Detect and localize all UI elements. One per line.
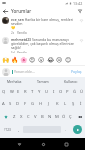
button[interactable]: Backspace <box>74 110 85 123</box>
staticText: Ü <box>80 89 84 95</box>
button[interactable]: 😮 <box>37 55 46 64</box>
button[interactable]: Back <box>1 7 9 15</box>
button[interactable]: Send <box>73 125 82 134</box>
button[interactable]: Kullanıcı <box>57 77 85 86</box>
button[interactable]: F <box>21 98 29 110</box>
button[interactable]: C <box>25 110 32 123</box>
button[interactable]: Like <box>78 17 84 23</box>
button[interactable]: D <box>14 98 21 110</box>
button[interactable]: P <box>64 86 71 98</box>
button[interactable]: ?123 <box>0 123 15 136</box>
button[interactable]: Ö <box>60 110 67 123</box>
button[interactable]: İ <box>77 98 85 110</box>
button[interactable]: U <box>43 86 50 98</box>
staticText: H <box>39 101 43 107</box>
staticText: . <box>65 127 67 133</box>
staticText: 😂 <box>47 56 55 63</box>
button[interactable]: Recents <box>61 139 71 149</box>
button[interactable]: Shift <box>0 110 11 123</box>
button[interactable]: Like <box>78 37 84 43</box>
button[interactable]: Paylaş <box>70 68 83 75</box>
button[interactable]: Q <box>0 86 8 98</box>
staticText: M <box>55 114 59 120</box>
staticText: Paylaş <box>71 69 82 74</box>
button[interactable]: R <box>22 86 29 98</box>
button[interactable]: S <box>7 98 14 110</box>
button[interactable]: I <box>50 86 57 98</box>
button[interactable]: Ü <box>78 86 85 98</box>
staticText: I <box>53 89 55 95</box>
staticText: E <box>17 89 20 95</box>
staticText: ece_sen Harika bir kare olmuş, renkleri … <box>11 17 77 30</box>
staticText: Ş <box>72 101 75 107</box>
staticText: V <box>34 114 37 120</box>
staticText: Ğ <box>73 89 77 95</box>
button[interactable]: B <box>39 110 46 123</box>
button[interactable]: L <box>61 98 69 110</box>
staticText: , <box>18 127 20 133</box>
button[interactable]: G <box>29 98 37 110</box>
staticText: Yorum ekle... <box>14 69 35 74</box>
button[interactable]: Ç <box>67 110 74 123</box>
staticText: W <box>10 89 14 95</box>
staticText: ?123 <box>4 128 11 132</box>
button[interactable]: 😢 <box>55 55 64 64</box>
staticText: Q <box>2 89 6 95</box>
button[interactable]: mehmetd23 Sonunda bu manzarayı görebildi… <box>0 37 85 53</box>
staticText: Yanıtla <box>17 31 27 35</box>
button[interactable]: Tamam <box>29 77 57 86</box>
staticText: Kullanıcı <box>64 79 78 84</box>
button[interactable]: T <box>29 86 36 98</box>
staticText: J <box>48 101 50 107</box>
button[interactable]: J <box>45 98 53 110</box>
button[interactable]: H <box>37 98 45 110</box>
staticText: B <box>41 114 44 120</box>
staticText: R <box>24 89 27 95</box>
staticText: 2s <box>11 31 15 35</box>
button[interactable]: O <box>57 86 64 98</box>
button[interactable]: 😍 <box>28 55 37 64</box>
button[interactable]: Filter <box>76 7 84 15</box>
button[interactable]: ece_sen Harika bir kare olmuş, renkleri … <box>0 17 85 35</box>
button[interactable]: 🌸 <box>19 55 28 64</box>
staticText: 😊 <box>65 56 72 63</box>
button[interactable]: Ğ <box>71 86 78 98</box>
staticText: P <box>66 89 69 95</box>
staticText: 🙌 <box>2 56 10 63</box>
staticText: Z <box>13 114 16 120</box>
button[interactable]: X <box>18 110 25 123</box>
staticText: L <box>64 101 67 107</box>
button[interactable]: E <box>15 86 22 98</box>
button[interactable]: Merhaba <box>0 77 29 86</box>
staticText: İ <box>80 101 82 107</box>
staticText: S <box>9 101 12 107</box>
button[interactable]: N <box>46 110 53 123</box>
staticText: Ö <box>62 114 66 120</box>
staticText: N <box>48 114 52 120</box>
button[interactable]: W <box>8 86 15 98</box>
button[interactable]: 😊 <box>64 55 73 64</box>
button[interactable]: K <box>53 98 61 110</box>
button[interactable]: 🙌 <box>1 55 10 64</box>
staticText: C <box>27 114 30 120</box>
button[interactable]: Y <box>36 86 43 98</box>
button[interactable]: 😂 <box>46 55 55 64</box>
button[interactable]: A <box>0 98 7 110</box>
button[interactable]: , <box>15 123 22 136</box>
staticText: K <box>56 101 59 107</box>
button[interactable]: Ş <box>69 98 77 110</box>
button[interactable]: Back <box>14 139 24 149</box>
button[interactable]: Z <box>11 110 18 123</box>
staticText: 😮 <box>38 56 45 63</box>
staticText: 13:42 <box>73 1 83 6</box>
staticText: D <box>16 101 20 107</box>
button[interactable]: V <box>32 110 39 123</box>
button[interactable]: Home <box>38 139 48 149</box>
staticText: Y <box>38 89 41 95</box>
button[interactable]: M <box>53 110 60 123</box>
staticText: T <box>31 89 34 95</box>
staticText: 😢 <box>56 56 63 63</box>
button[interactable]: 🔥 <box>10 55 19 64</box>
